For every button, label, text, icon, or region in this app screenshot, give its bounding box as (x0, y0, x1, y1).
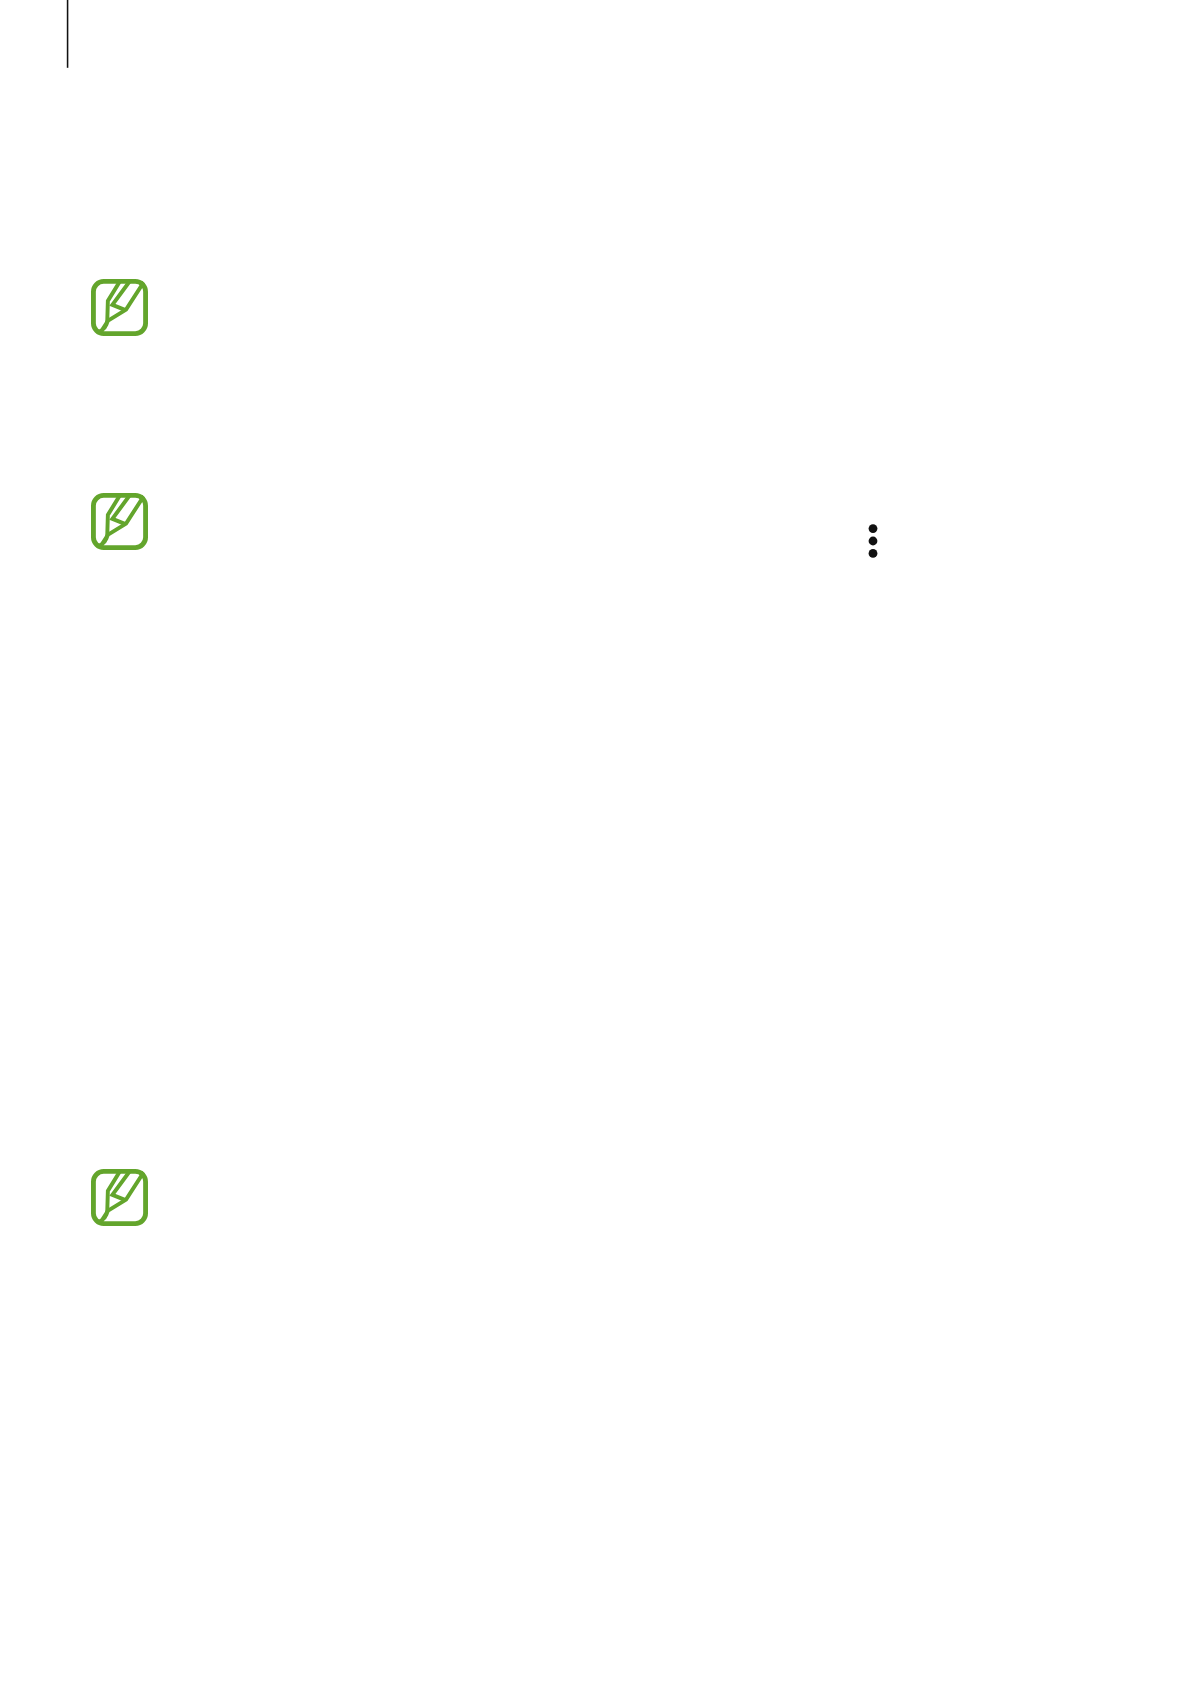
button[interactable]: More options (849, 517, 897, 565)
button[interactable]: Note (91, 1169, 148, 1226)
button[interactable]: Note (91, 493, 148, 550)
button[interactable]: Note (91, 279, 148, 336)
